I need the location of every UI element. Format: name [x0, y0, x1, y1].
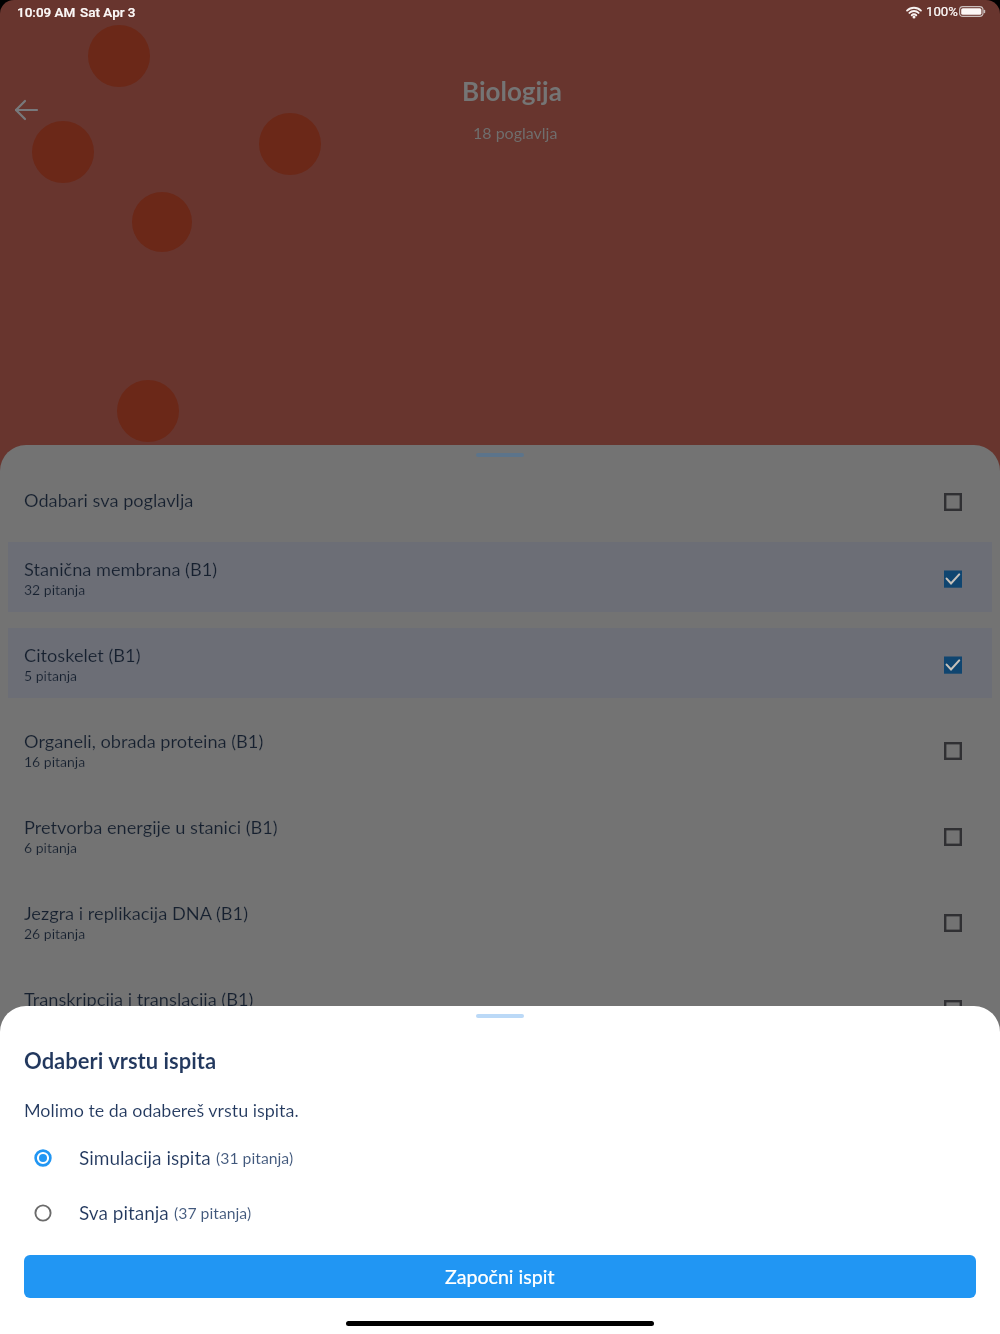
staticText: Odabari sva poglavlja [24, 489, 194, 511]
staticText: Odaberi vrstu ispita [24, 1047, 217, 1073]
staticText: 16 pitanja [24, 753, 86, 770]
staticText: (37 pitanja) [174, 1203, 252, 1222]
staticText: 10:09 AM [17, 4, 76, 20]
button[interactable]: Započni ispit [24, 1255, 976, 1298]
staticText: 32 pitanja [24, 581, 86, 598]
staticText: Biologija [462, 75, 562, 106]
staticText: 18 poglavlja [473, 123, 558, 142]
button[interactable]: Organeli, obrada proteina (B1) [0, 706, 1000, 792]
staticText: Transkripcija i translacija (B1) [24, 988, 254, 1010]
button[interactable]: Jezgra i replikacija DNA (B1) [0, 878, 1000, 964]
button[interactable]: Stanična membrana (B1) [0, 534, 1000, 620]
staticText: 6 pitanja [24, 839, 78, 856]
button[interactable]: Citoskelet (B1) [0, 620, 1000, 706]
staticText: Stanična membrana (B1) [24, 558, 218, 580]
button[interactable]: Sva pitanja [0, 1185, 1000, 1240]
button[interactable]: Simulacija ispita [0, 1130, 1000, 1185]
button[interactable]: Odabari sva poglavlja [0, 466, 1000, 534]
button[interactable]: Back [3, 87, 48, 132]
button[interactable]: Transkripcija i translacija (B1) [0, 964, 1000, 1050]
staticText: Sat Apr 3 [80, 4, 136, 20]
staticText: 100% [926, 4, 958, 19]
staticText: Pretvorba energije u stanici (B1) [24, 816, 278, 838]
staticText: Organeli, obrada proteina (B1) [24, 730, 264, 752]
staticText: (31 pitanja) [216, 1148, 294, 1167]
staticText: Jezgra i replikacija DNA (B1) [24, 902, 249, 924]
staticText: 5 pitanja [24, 667, 78, 684]
staticText: Citoskelet (B1) [24, 644, 141, 666]
button[interactable]: Pretvorba energije u stanici (B1) [0, 792, 1000, 878]
staticText: Simulacija ispita [79, 1146, 211, 1169]
staticText: Molimo te da odabereš vrstu ispita. [24, 1099, 299, 1120]
staticText: 26 pitanja [24, 925, 86, 942]
staticText: Započni ispit [445, 1265, 555, 1289]
staticText: Sva pitanja [79, 1201, 169, 1224]
